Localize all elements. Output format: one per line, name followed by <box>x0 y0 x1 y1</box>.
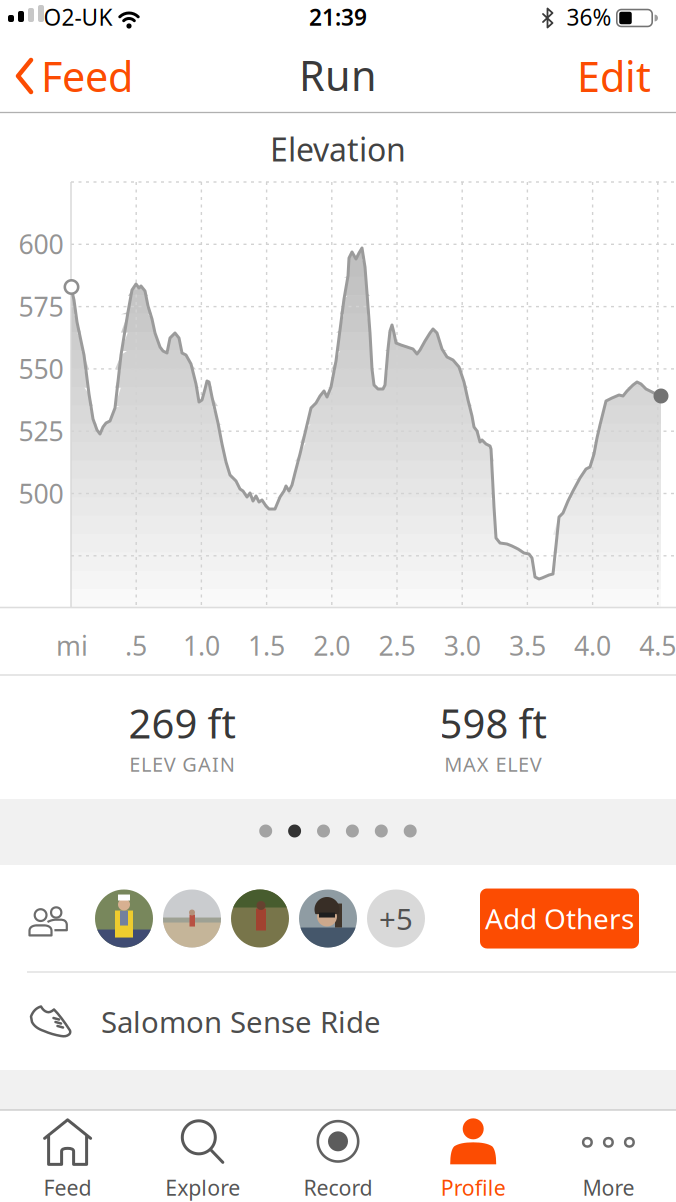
staticText: Add Others <box>485 900 634 937</box>
staticText: Edit <box>577 49 651 103</box>
button[interactable]: Add Others <box>480 888 639 948</box>
button[interactable]: Record <box>271 1116 405 1202</box>
staticText: 21:39 <box>309 2 367 32</box>
staticText: Run <box>299 48 377 102</box>
button[interactable]: Back to Feed <box>8 48 140 104</box>
staticText: 600 <box>18 226 63 262</box>
staticText: 1.5 <box>248 628 285 663</box>
staticText: Feed <box>41 49 133 103</box>
staticText: Salomon Sense Ride <box>101 1002 381 1041</box>
staticText: ELEV GAIN <box>129 751 235 777</box>
staticText: MAX ELEV <box>444 751 542 777</box>
button[interactable]: Explore <box>136 1116 270 1202</box>
staticText: Profile <box>441 1173 506 1202</box>
staticText: 3.5 <box>509 628 546 663</box>
staticText: O2-UK <box>43 2 112 32</box>
staticText: 4.0 <box>574 628 611 663</box>
button[interactable]: Athletes on this activity <box>28 873 425 963</box>
staticText: 598 ft <box>439 696 546 749</box>
button[interactable]: Profile <box>406 1116 540 1202</box>
staticText: Explore <box>165 1173 240 1202</box>
staticText: 36% <box>566 2 611 32</box>
button[interactable]: More <box>541 1116 675 1202</box>
staticText: 500 <box>18 476 63 511</box>
staticText: 2.0 <box>313 628 350 663</box>
staticText: Elevation <box>270 128 406 170</box>
staticText: mi <box>56 628 88 663</box>
staticText: .5 <box>125 628 147 663</box>
staticText: 2.5 <box>378 628 415 663</box>
button[interactable]: Salomon Sense Ride <box>0 973 676 1070</box>
staticText: 525 <box>18 413 63 449</box>
staticText: More <box>582 1173 634 1202</box>
staticText: 575 <box>18 289 63 324</box>
button[interactable]: Edit <box>574 48 654 104</box>
staticText: 4.5 <box>639 628 676 663</box>
staticText: Feed <box>44 1173 92 1202</box>
staticText: 3.0 <box>444 628 481 663</box>
button[interactable]: Feed <box>1 1116 135 1202</box>
staticText: 269 ft <box>128 696 235 749</box>
staticText: Record <box>303 1173 372 1202</box>
staticText: 1.0 <box>183 628 220 663</box>
staticText: +5 <box>379 899 413 938</box>
staticText: 550 <box>18 351 63 386</box>
